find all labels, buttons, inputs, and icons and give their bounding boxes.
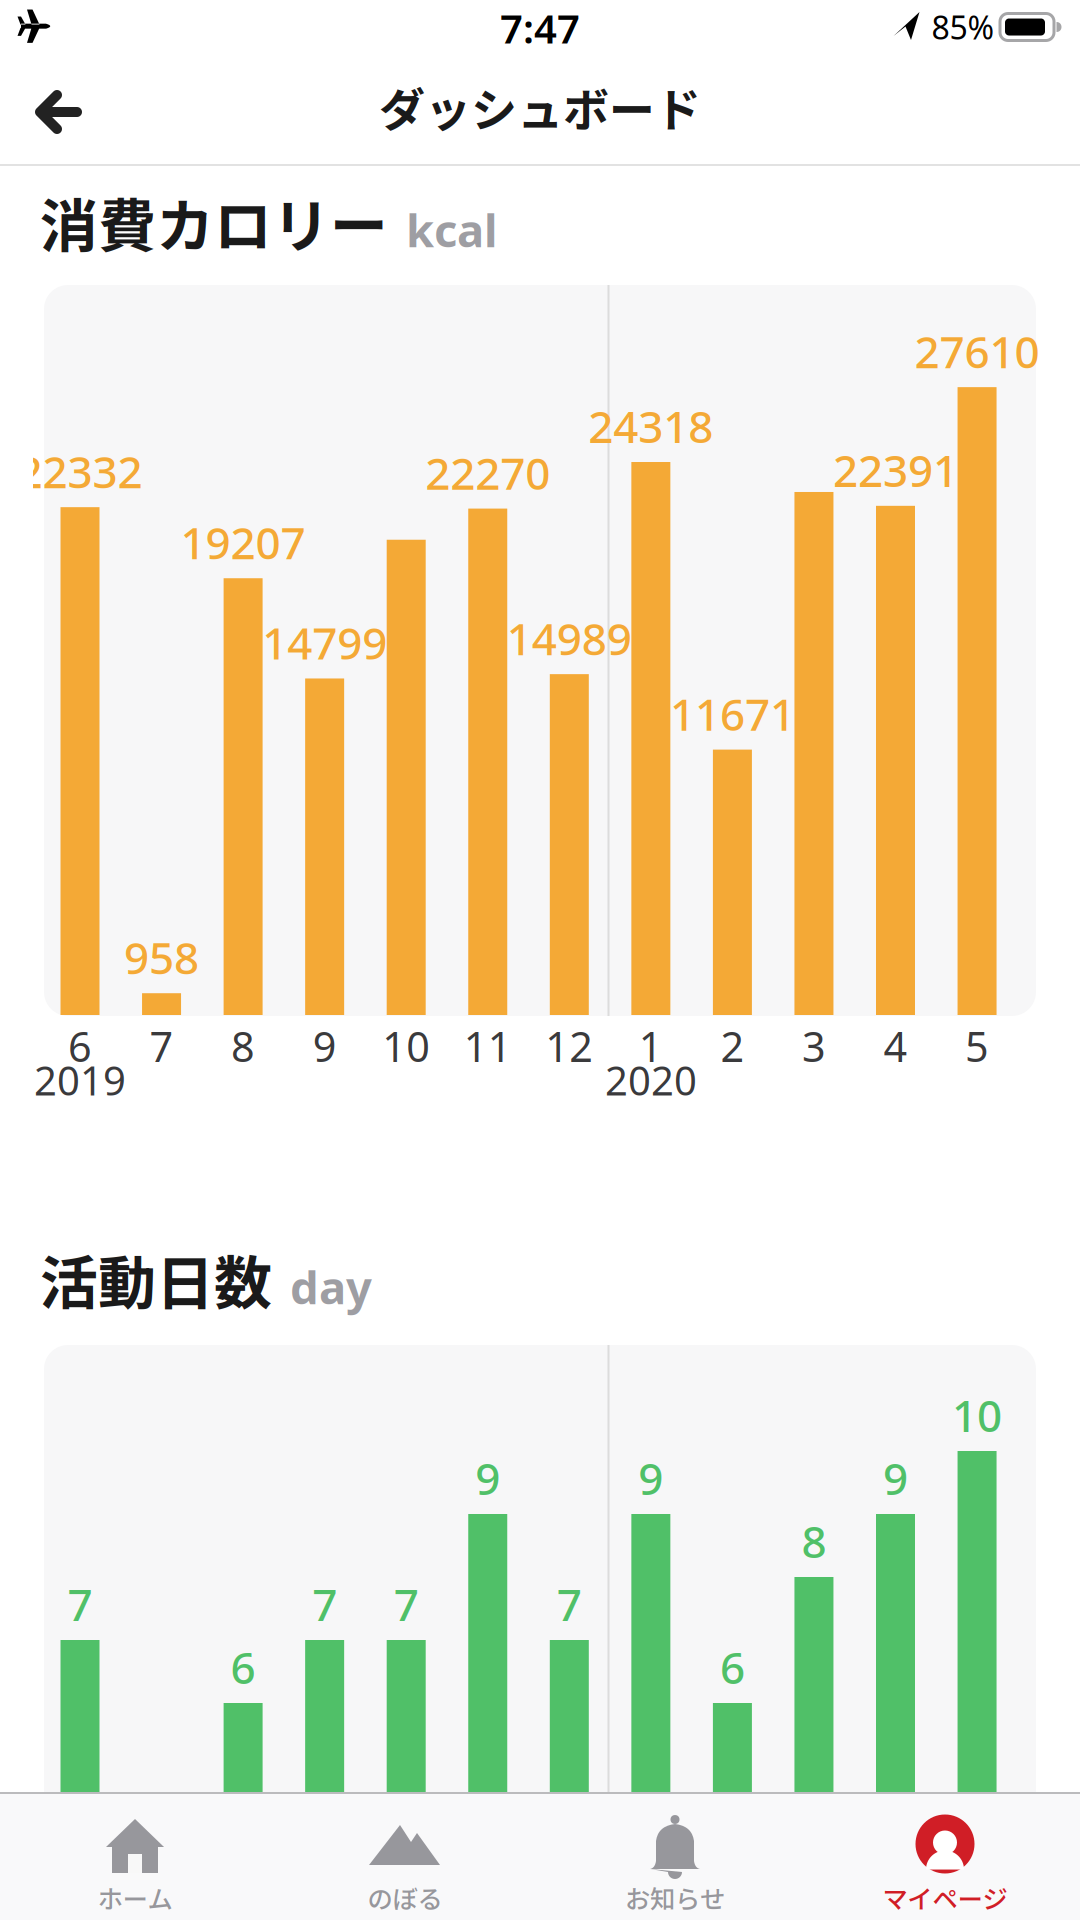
staticText: 5 bbox=[965, 1019, 989, 1073]
staticText: 8 bbox=[801, 1512, 826, 1570]
button[interactable]: ホーム bbox=[0, 1794, 270, 1920]
staticText: 22332 bbox=[17, 442, 142, 500]
staticText: 3 bbox=[802, 1019, 826, 1073]
staticText: お知らせ bbox=[625, 1879, 725, 1916]
staticText: 27610 bbox=[914, 322, 1039, 380]
staticText: 2019 bbox=[34, 1053, 126, 1106]
staticText: 7 bbox=[150, 1019, 174, 1073]
button[interactable]: マイページ bbox=[810, 1794, 1080, 1920]
staticText: 7 bbox=[557, 1575, 582, 1633]
staticText: 7:47 bbox=[500, 1, 580, 54]
staticText: 14799 bbox=[262, 613, 387, 672]
staticText: 9 bbox=[638, 1449, 663, 1507]
staticText: 14989 bbox=[507, 609, 632, 667]
staticText: 6 bbox=[68, 1019, 92, 1073]
staticText: 7 bbox=[67, 1575, 92, 1633]
staticText: 11671 bbox=[670, 684, 795, 743]
staticText: 6 bbox=[720, 1638, 745, 1696]
staticText: 8 bbox=[231, 1019, 255, 1073]
staticText: 2 bbox=[720, 1019, 744, 1073]
button[interactable]: Back bbox=[35, 91, 81, 133]
staticText: 958 bbox=[124, 928, 199, 986]
staticText: 10 bbox=[952, 1386, 1002, 1444]
staticText: 11 bbox=[464, 1019, 512, 1073]
staticText: 4 bbox=[883, 1019, 907, 1073]
staticText: 9 bbox=[475, 1449, 500, 1507]
staticText: のぼる bbox=[367, 1879, 442, 1916]
staticText: 10 bbox=[382, 1019, 430, 1073]
staticText: 9 bbox=[883, 1449, 908, 1507]
staticText: 7 bbox=[394, 1575, 419, 1633]
staticText: 1 bbox=[639, 1019, 663, 1073]
staticText: 消費カロリー bbox=[40, 180, 388, 264]
staticText: kcal bbox=[406, 200, 498, 260]
staticText: ダッシュボード bbox=[379, 74, 701, 140]
staticText: 85% bbox=[931, 6, 994, 48]
staticText: 24318 bbox=[588, 397, 713, 455]
staticText: ホーム bbox=[97, 1879, 172, 1916]
staticText: 12 bbox=[545, 1019, 593, 1073]
staticText: 7 bbox=[312, 1575, 337, 1633]
staticText: マイページ bbox=[882, 1879, 1007, 1916]
staticText: 22391 bbox=[833, 441, 958, 499]
staticText: 2020 bbox=[605, 1053, 697, 1106]
staticText: 9 bbox=[313, 1019, 337, 1073]
button[interactable]: お知らせ bbox=[540, 1794, 810, 1920]
button[interactable]: のぼる bbox=[270, 1794, 540, 1920]
staticText: 19207 bbox=[181, 513, 306, 571]
staticText: 活動日数 bbox=[40, 1237, 272, 1321]
staticText: day bbox=[290, 1257, 372, 1317]
staticText: 6 bbox=[231, 1638, 256, 1696]
staticText: 22270 bbox=[425, 443, 550, 502]
